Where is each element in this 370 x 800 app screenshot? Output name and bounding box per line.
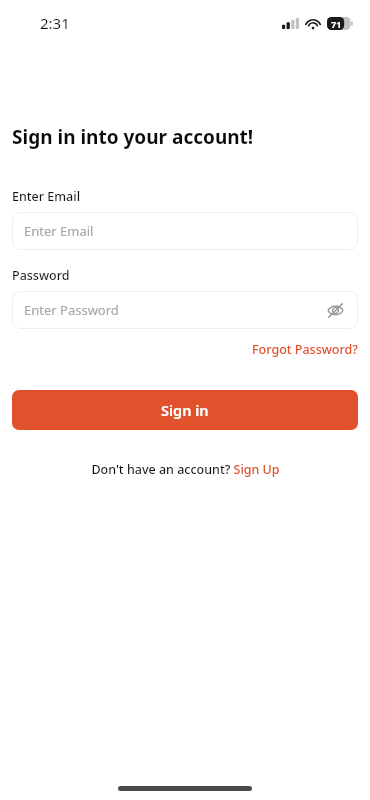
button[interactable]: Sign in bbox=[12, 390, 358, 430]
staticText: Enter Email bbox=[12, 188, 81, 205]
button[interactable]: Show password bbox=[322, 297, 348, 323]
staticText: 2:31 bbox=[40, 13, 70, 33]
staticText: Sign in into your account! bbox=[12, 124, 254, 150]
button[interactable]: Enter Password bbox=[12, 291, 358, 329]
button[interactable]: Don't have an account? Sign Up bbox=[85, 458, 286, 481]
staticText: Don't have an account? Sign Up bbox=[91, 461, 280, 478]
button[interactable]: Forgot Password? bbox=[240, 338, 370, 361]
staticText: Sign in bbox=[161, 400, 209, 420]
staticText: 71 bbox=[331, 18, 342, 30]
staticText: Password bbox=[12, 267, 70, 284]
staticText: Enter Password bbox=[24, 301, 119, 319]
staticText: Forgot Password? bbox=[252, 341, 358, 358]
button[interactable]: Enter Email bbox=[12, 212, 358, 250]
staticText: Enter Email bbox=[24, 222, 94, 240]
